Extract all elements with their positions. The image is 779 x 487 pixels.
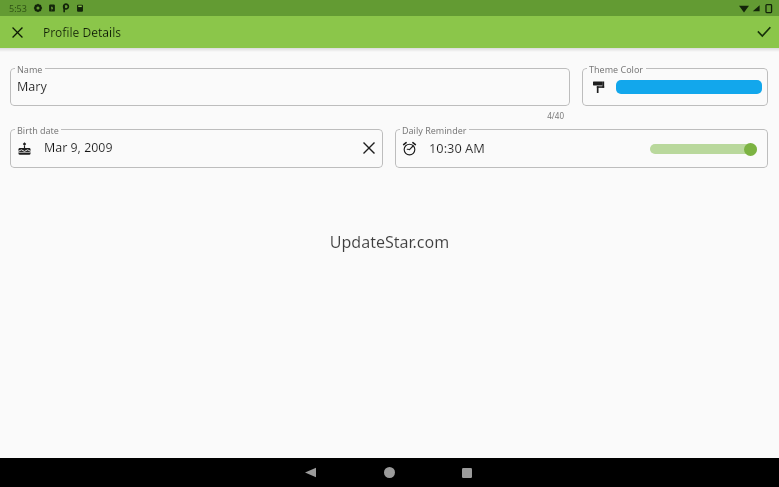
button[interactable]: Recents [447,458,487,487]
button[interactable]: Clear birth date [358,139,378,159]
staticText: UpdateStar.com [0,231,779,253]
staticText: 5:53 [9,2,27,14]
button[interactable]: Pick theme color [589,77,609,97]
button[interactable]: Home [369,458,409,487]
staticText: Theme Color [589,63,644,75]
staticText: Name [17,63,43,75]
staticText: Birth date [17,124,59,136]
button[interactable]: Birth date [10,129,383,168]
button[interactable] [616,80,762,94]
button[interactable]: Close [0,16,34,48]
button[interactable]: Back [290,458,330,487]
staticText: Mar 9, 2009 [44,139,113,156]
staticText: Daily Reminder [402,124,467,136]
button[interactable]: Daily Reminder [395,129,768,168]
staticText: Profile Details [43,24,121,40]
button[interactable]: Name [10,68,570,106]
button[interactable]: Theme Color [582,68,768,106]
staticText: 10:30 AM [429,139,485,156]
button[interactable]: Save [745,16,779,48]
button[interactable]: Daily reminder toggle [650,140,757,158]
staticText: 4/40 [10,110,564,121]
staticText: Mary [17,78,47,95]
